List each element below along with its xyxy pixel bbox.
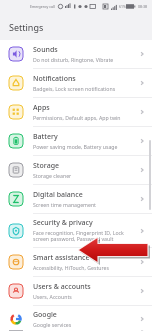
button[interactable]: Security & privacy (0, 214, 152, 247)
other: Open Smart assistance (138, 258, 146, 266)
other: Open Security & privacy (138, 227, 146, 235)
staticText: 08:38 (138, 4, 147, 9)
staticText: Emergency call (30, 4, 55, 9)
other: Open Battery (138, 137, 146, 145)
button[interactable]: Battery (0, 127, 152, 155)
staticText: Settings (9, 21, 44, 33)
staticText: Smart assistance (33, 253, 90, 263)
staticText: Battery (33, 132, 58, 142)
button[interactable]: Apps (0, 98, 152, 126)
button[interactable]: Storage (0, 156, 152, 184)
staticText: Digital balance (33, 190, 83, 200)
staticText: Google services (33, 321, 72, 328)
staticText: Face recognition, Fingerprint ID, Lock s… (33, 229, 138, 243)
button[interactable]: Sounds (0, 40, 152, 68)
staticText: Security & privacy (33, 218, 93, 228)
other: Open Storage (138, 166, 146, 174)
other: Open Notifications (138, 79, 146, 87)
staticText: Permissions, Default apps, App twin (33, 114, 121, 121)
button[interactable]: Google (0, 306, 152, 331)
staticText: Sounds (33, 45, 58, 55)
staticText: 61% (119, 4, 126, 9)
staticText: Users & accounts (33, 282, 91, 292)
other: Open Google (138, 315, 146, 323)
other: Open Sounds (138, 50, 146, 58)
staticText: Accessibility, HiTouch, Gestures (33, 264, 109, 271)
other: Open Digital balance (138, 195, 146, 203)
staticText: Storage cleaner (33, 172, 72, 179)
button[interactable]: Digital balance (0, 185, 152, 213)
staticText: Badgeis, Lock screen notifications (33, 85, 116, 92)
staticText: Users, Accounts (33, 293, 72, 300)
other: Open Apps (138, 108, 146, 116)
other: Open Users & accounts (138, 287, 146, 295)
staticText: Do not disturb, Ringtone, Vibrate (33, 56, 114, 63)
staticText: Apps (33, 103, 50, 113)
staticText: Notifications (33, 74, 76, 84)
staticText: Power saving mode, Battery usage (33, 143, 118, 150)
button[interactable]: Notifications (0, 69, 152, 97)
button[interactable]: Users & accounts (0, 277, 152, 305)
staticText: Storage (33, 161, 59, 171)
staticText: Google (33, 310, 57, 320)
button[interactable]: Smart assistance (0, 248, 152, 276)
staticText: Screen time management (33, 201, 96, 208)
